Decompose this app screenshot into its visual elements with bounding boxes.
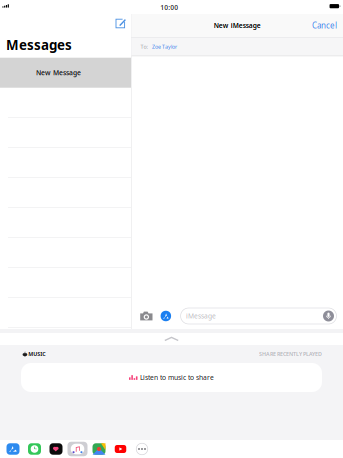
staticText: New Message: [36, 68, 81, 77]
staticText: To:: [141, 43, 148, 50]
staticText: Messages: [6, 36, 72, 54]
staticText: Cancel: [312, 20, 337, 31]
button[interactable]: More: [132, 441, 152, 456]
button[interactable]: Recents: [24, 441, 44, 456]
staticText: New iMessage: [214, 21, 261, 30]
button[interactable]: Record audio: [323, 310, 334, 321]
button[interactable]: Camera: [138, 309, 155, 323]
button[interactable]: Collapse app drawer: [162, 334, 181, 343]
staticText: MUSIC: [28, 350, 45, 358]
button[interactable]: Listen to music to share: [0, 363, 343, 392]
staticText: Listen to music to share: [140, 373, 214, 382]
staticText: Zoe Taylor: [152, 43, 177, 50]
button[interactable]: Apps: [159, 309, 173, 323]
button[interactable]: Music: [67, 441, 87, 456]
button[interactable]: Digital Touch: [46, 441, 66, 456]
button[interactable]: SHARE RECENTLY PLAYED: [259, 350, 322, 358]
button[interactable]: New Message: [113, 16, 128, 31]
button[interactable]: App Store: [3, 441, 23, 456]
button[interactable]: Maps: [89, 441, 109, 456]
staticText: SHARE RECENTLY PLAYED: [259, 350, 322, 358]
button[interactable]: Cancel: [309, 17, 340, 34]
staticText: 10:00: [160, 3, 178, 12]
button[interactable]: YouTube: [110, 441, 130, 456]
staticText: iMessage: [186, 312, 216, 320]
button[interactable]: New Message: [0, 58, 131, 88]
